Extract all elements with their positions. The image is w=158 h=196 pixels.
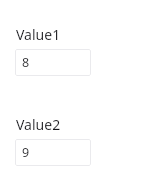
button[interactable]: Value2 input field: [15, 139, 91, 166]
staticText: 9: [22, 144, 30, 161]
button[interactable]: Value1 input field: [15, 49, 91, 76]
staticText: Value2: [16, 115, 61, 134]
staticText: Value1: [16, 25, 61, 44]
staticText: 8: [22, 54, 30, 71]
